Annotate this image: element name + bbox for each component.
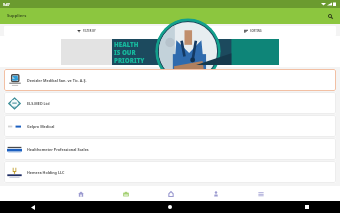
staticText: Gelpro Medical [27,124,55,129]
button[interactable]: SORTING [170,26,336,36]
button[interactable]: Search [324,10,336,22]
button[interactable]: Profile [193,186,238,201]
button[interactable]: Gelpro Medical [4,115,336,137]
button[interactable]: ELS-MED Ltd [4,92,336,114]
button[interactable]: Home [165,202,175,212]
staticText: PRIORITY [114,56,145,64]
button[interactable]: Hemera Holding LLC [4,161,336,183]
button[interactable]: Recents [302,202,312,212]
button[interactable]: Cart [148,186,193,201]
button[interactable]: Denizler Medikal San. ve Tic. A.Ş. [4,69,336,91]
staticText: Healthometer Professional Scales [27,147,89,152]
staticText: Denizler Medikal San. ve Tic. A.Ş. [27,78,87,83]
staticText: SORTING [250,29,262,33]
staticText: HEALTH [114,40,139,48]
staticText: IS OUR [114,48,136,56]
button[interactable]: Orders [103,186,148,201]
button[interactable]: Menu [238,186,283,201]
button[interactable]: Home [58,186,103,201]
button[interactable]: FILTER BY [4,26,169,36]
staticText: Suppliers [7,13,27,19]
staticText: Hemera Holding LLC [27,170,65,175]
button[interactable]: Back [28,202,38,212]
staticText: 9:47 [3,2,10,6]
button[interactable]: Healthometer Professional Scales [4,138,336,160]
staticText: ELS-MED Ltd [27,101,50,106]
staticText: FILTER BY [83,29,96,33]
